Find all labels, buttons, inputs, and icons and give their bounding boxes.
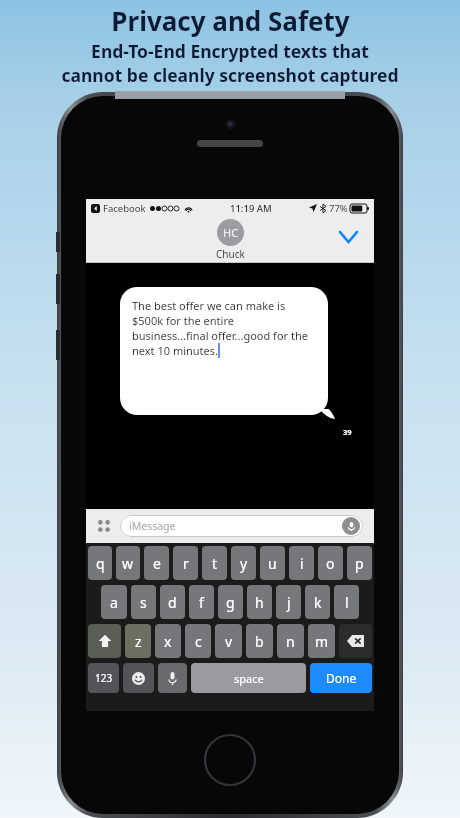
staticText: space bbox=[234, 671, 264, 686]
staticText: r bbox=[183, 554, 189, 573]
button[interactable]: Done bbox=[310, 663, 372, 693]
button[interactable]: s bbox=[131, 585, 156, 619]
staticText: f bbox=[199, 593, 204, 612]
staticText: v bbox=[225, 632, 233, 651]
staticText: p bbox=[355, 554, 364, 573]
staticText: i bbox=[300, 554, 304, 573]
staticText: o bbox=[326, 554, 335, 573]
button[interactable]: The best offer we can make is bbox=[120, 287, 328, 415]
button[interactable]: w bbox=[116, 546, 140, 580]
staticText: t bbox=[212, 554, 218, 573]
staticText: business...final offer...good for the bbox=[132, 328, 308, 343]
staticText: 39 bbox=[343, 427, 352, 437]
staticText: x bbox=[164, 632, 172, 651]
staticText: iMessage bbox=[129, 519, 176, 533]
button[interactable]: 123 bbox=[88, 663, 119, 693]
button[interactable]: m bbox=[308, 624, 335, 658]
button[interactable]: e bbox=[144, 546, 169, 580]
staticText: a bbox=[110, 593, 118, 612]
staticText: next 10 minutes. bbox=[132, 343, 218, 358]
staticText: q bbox=[96, 554, 105, 573]
staticText: HC bbox=[223, 225, 239, 240]
button[interactable]: r bbox=[173, 546, 198, 580]
staticText: y bbox=[240, 554, 248, 573]
button[interactable]: Emoji bbox=[123, 663, 154, 693]
staticText: Privacy and Safety bbox=[111, 3, 350, 38]
staticText: h bbox=[255, 593, 264, 612]
staticText: s bbox=[140, 593, 147, 612]
button[interactable]: Apps bbox=[93, 515, 115, 537]
button[interactable]: space bbox=[191, 663, 306, 693]
button[interactable]: Expand details bbox=[336, 225, 360, 249]
staticText: k bbox=[314, 593, 322, 612]
button[interactable]: h bbox=[247, 585, 272, 619]
button[interactable]: p bbox=[347, 546, 372, 580]
button[interactable]: u bbox=[260, 546, 285, 580]
button[interactable]: b bbox=[246, 624, 273, 658]
button[interactable]: iMessage bbox=[120, 515, 363, 537]
button[interactable]: l bbox=[334, 585, 359, 619]
button[interactable]: v bbox=[215, 624, 242, 658]
staticText: d bbox=[168, 593, 177, 612]
button[interactable]: y bbox=[231, 546, 256, 580]
staticText: j bbox=[287, 593, 291, 612]
staticText: cannot be cleanly screenshot captured bbox=[61, 63, 399, 87]
button[interactable]: t bbox=[202, 546, 227, 580]
button[interactable]: i bbox=[289, 546, 314, 580]
staticText: Facebook bbox=[103, 202, 146, 215]
staticText: u bbox=[268, 554, 277, 573]
staticText: z bbox=[135, 632, 142, 651]
button[interactable]: f bbox=[189, 585, 214, 619]
staticText: l bbox=[345, 593, 349, 612]
button[interactable]: Dictate bbox=[342, 517, 360, 535]
staticText: 77% bbox=[329, 202, 348, 215]
button[interactable]: x bbox=[155, 624, 181, 658]
staticText: w bbox=[122, 554, 134, 573]
staticText: 11:19 AM bbox=[230, 202, 272, 215]
button[interactable]: o bbox=[318, 546, 343, 580]
staticText: Chuck bbox=[216, 247, 245, 261]
staticText: Done bbox=[326, 670, 357, 686]
staticText: The best offer we can make is bbox=[132, 298, 286, 313]
button[interactable]: k bbox=[305, 585, 330, 619]
button[interactable]: c bbox=[185, 624, 211, 658]
button[interactable]: q bbox=[88, 546, 112, 580]
button[interactable]: d bbox=[160, 585, 185, 619]
staticText: 123 bbox=[95, 671, 113, 685]
staticText: $500k for the entire bbox=[132, 313, 234, 328]
button[interactable]: z bbox=[125, 624, 151, 658]
staticText: End-To-End Encrypted texts that bbox=[91, 39, 369, 63]
button[interactable]: j bbox=[276, 585, 301, 619]
button[interactable]: g bbox=[218, 585, 243, 619]
button[interactable]: n bbox=[277, 624, 304, 658]
button[interactable]: Shift bbox=[88, 624, 121, 658]
button[interactable]: Contact avatar bbox=[217, 219, 244, 246]
staticText: b bbox=[255, 632, 264, 651]
button[interactable]: a bbox=[101, 585, 127, 619]
staticText: m bbox=[315, 632, 329, 651]
button[interactable]: Backspace bbox=[339, 624, 372, 658]
button[interactable]: Voice input bbox=[158, 663, 187, 693]
staticText: e bbox=[153, 554, 161, 573]
staticText: g bbox=[226, 593, 235, 612]
staticText: n bbox=[286, 632, 295, 651]
staticText: c bbox=[195, 632, 202, 651]
